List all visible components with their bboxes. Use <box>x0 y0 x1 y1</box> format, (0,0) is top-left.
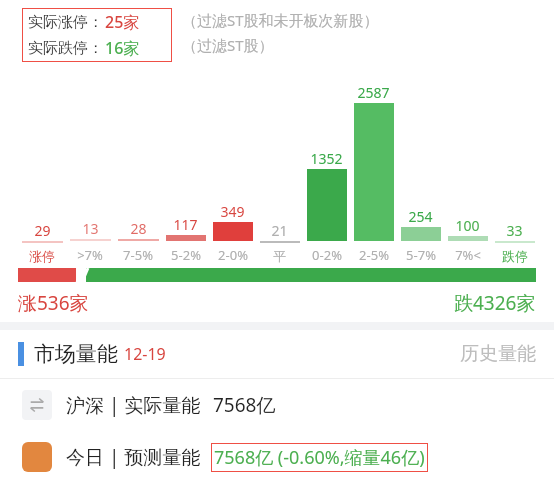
staticText: 5-2% <box>171 246 201 264</box>
staticText: 平 <box>273 248 286 264</box>
staticText: 0-2% <box>312 246 342 264</box>
staticText: 349 <box>220 202 245 221</box>
staticText: 今日 | 预测量能 <box>66 444 201 470</box>
staticText: 16家 <box>105 37 140 59</box>
button[interactable]: 历史量能 <box>460 342 536 366</box>
staticText: 7568亿 <box>213 392 276 418</box>
staticText: 12-19 <box>124 343 166 365</box>
staticText: 5-7% <box>406 246 436 264</box>
staticText: 2-5% <box>359 246 389 264</box>
staticText: 沪深 | 实际量能 <box>66 392 201 418</box>
staticText: 跌4326家 <box>454 290 536 316</box>
staticText: （过滤ST股） <box>182 35 274 55</box>
staticText: 实际涨停： <box>28 13 103 32</box>
button[interactable]: 实际量能图标 <box>0 379 554 431</box>
staticText: 涨停 <box>29 248 55 264</box>
staticText: 7568亿 (-0.60%,缩量46亿) <box>214 445 425 470</box>
staticText: 254 <box>408 207 433 226</box>
staticText: 7-5% <box>123 246 153 264</box>
staticText: 市场量能 <box>34 341 118 367</box>
staticText: 100 <box>455 216 480 235</box>
other: 实际量能图标 <box>22 390 52 420</box>
staticText: 实际跌停： <box>28 39 103 58</box>
staticText: 2-0% <box>218 246 248 264</box>
staticText: 33 <box>506 221 523 240</box>
staticText: >7% <box>77 246 103 264</box>
staticText: 2587 <box>357 83 390 102</box>
staticText: 29 <box>34 221 51 240</box>
staticText: 涨536家 <box>18 290 89 316</box>
staticText: 1352 <box>310 149 343 168</box>
button[interactable]: 今日 | 预测量能 <box>0 431 554 483</box>
staticText: （过滤ST股和未开板次新股） <box>182 10 379 30</box>
staticText: 28 <box>130 219 147 238</box>
staticText: 跌停 <box>502 248 528 264</box>
staticText: 7%< <box>455 246 481 264</box>
staticText: 25家 <box>105 11 140 33</box>
staticText: 历史量能 <box>460 342 536 366</box>
staticText: 21 <box>271 221 288 240</box>
staticText: 13 <box>82 219 99 238</box>
staticText: 117 <box>173 215 198 234</box>
